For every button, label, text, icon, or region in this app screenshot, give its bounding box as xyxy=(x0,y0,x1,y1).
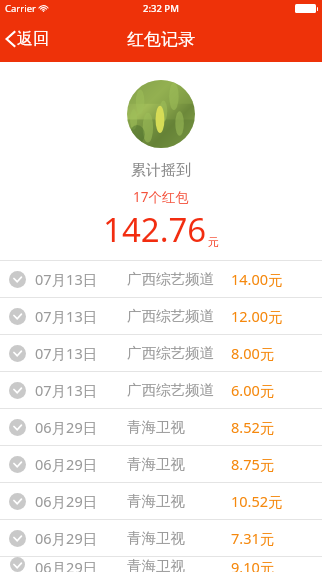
staticText: 青海卫视 xyxy=(127,492,231,510)
staticText: 广西综艺频道 xyxy=(127,344,231,362)
staticText: 广西综艺频道 xyxy=(127,307,231,325)
button[interactable]: 06月29日 xyxy=(0,483,322,519)
button[interactable]: 06月29日 xyxy=(0,520,322,556)
staticText: 7.31元 xyxy=(231,528,275,548)
staticText: 06月29日 xyxy=(35,491,109,511)
staticText: Carrier xyxy=(5,2,36,15)
staticText: 06月29日 xyxy=(35,417,109,437)
button[interactable]: 06月29日 xyxy=(0,446,322,482)
staticText: 红包记录 xyxy=(127,29,195,50)
staticText: 07月13日 xyxy=(35,343,109,363)
staticText: 142.76 xyxy=(103,207,207,252)
staticText: 07月13日 xyxy=(35,380,109,400)
staticText: 返回 xyxy=(17,29,49,49)
other: Back xyxy=(4,29,17,49)
staticText: 青海卫视 xyxy=(127,529,231,547)
staticText: 青海卫视 xyxy=(127,557,231,572)
button[interactable]: 06月29日 xyxy=(0,409,322,445)
button[interactable]: 07月13日 xyxy=(0,298,322,334)
button[interactable]: 07月13日 xyxy=(0,335,322,371)
staticText: 广西综艺频道 xyxy=(127,381,231,399)
staticText: 12.00元 xyxy=(231,306,283,326)
button[interactable]: 06月29日 xyxy=(0,557,322,572)
staticText: 06月29日 xyxy=(35,528,109,548)
button[interactable] xyxy=(127,80,195,148)
staticText: 10.52元 xyxy=(231,491,283,511)
button[interactable]: 07月13日 xyxy=(0,261,322,297)
staticText: 青海卫视 xyxy=(127,418,231,436)
staticText: 06月29日 xyxy=(35,454,109,474)
button[interactable]: 07月13日 xyxy=(0,372,322,408)
staticText: 8.75元 xyxy=(231,454,275,474)
button[interactable]: Back xyxy=(0,21,59,57)
staticText: 2:32 PM xyxy=(143,2,179,15)
staticText: 06月29日 xyxy=(35,557,109,572)
staticText: 元 xyxy=(208,235,219,249)
staticText: 07月13日 xyxy=(35,306,109,326)
staticText: 07月13日 xyxy=(35,269,109,289)
staticText: 17个红包 xyxy=(133,188,189,206)
staticText: 6.00元 xyxy=(231,380,275,400)
staticText: 8.00元 xyxy=(231,343,275,363)
staticText: 累计摇到 xyxy=(131,161,191,180)
staticText: 青海卫视 xyxy=(127,455,231,473)
staticText: 9.10元 xyxy=(231,557,275,572)
staticText: 广西综艺频道 xyxy=(127,270,231,288)
staticText: 8.52元 xyxy=(231,417,275,437)
staticText: 14.00元 xyxy=(231,269,283,289)
